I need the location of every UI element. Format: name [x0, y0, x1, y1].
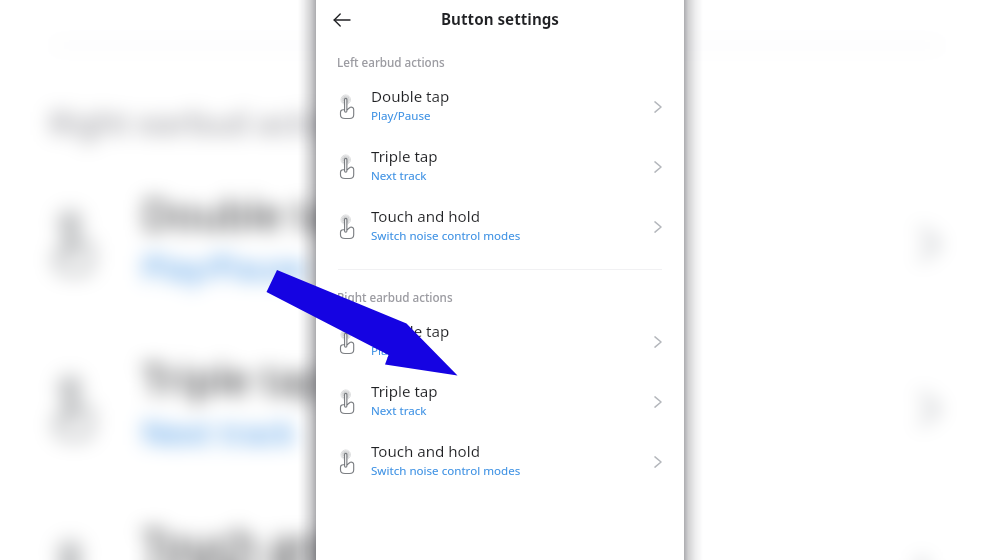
button[interactable]: Triple tap — [316, 135, 684, 195]
button[interactable]: Double tap — [316, 75, 684, 135]
button[interactable]: Touch and hold — [0, 485, 1000, 560]
staticText: Switch noise control modes — [371, 463, 521, 479]
button[interactable]: Triple tap — [0, 320, 1000, 485]
button[interactable]: Triple tap — [316, 370, 684, 430]
staticText: Switch noise control modes — [371, 228, 521, 244]
staticText: Touch and hold — [371, 441, 480, 462]
staticText: Triple tap — [371, 146, 438, 167]
staticText: Play/Pause — [371, 108, 431, 124]
staticText: Play/Pause — [371, 343, 431, 359]
staticText: Right earbud actions — [49, 101, 368, 145]
button[interactable]: Double tap — [316, 310, 684, 370]
staticText: Button settings — [316, 9, 684, 30]
button[interactable]: Touch and hold — [0, 0, 1000, 6]
button[interactable]: Touch and hold — [316, 430, 684, 490]
staticText: Double tap — [371, 86, 450, 107]
staticText: Touch and hold — [142, 516, 442, 560]
staticText: Next track — [371, 168, 427, 184]
staticText: Next track — [142, 411, 295, 454]
staticText: Left earbud actions — [337, 55, 445, 71]
button[interactable]: Back — [332, 10, 352, 30]
staticText: Right earbud actions — [337, 290, 453, 306]
staticText: Next track — [371, 403, 427, 419]
staticText: Triple tap — [371, 381, 438, 402]
staticText: Double tap — [142, 186, 358, 243]
staticText: Touch and hold — [371, 206, 480, 227]
button[interactable]: Touch and hold — [316, 195, 684, 255]
staticText: Double tap — [371, 321, 450, 342]
staticText: Triple tap — [142, 351, 326, 408]
button[interactable]: Double tap — [0, 155, 1000, 320]
staticText: Play/Pause — [142, 246, 306, 289]
